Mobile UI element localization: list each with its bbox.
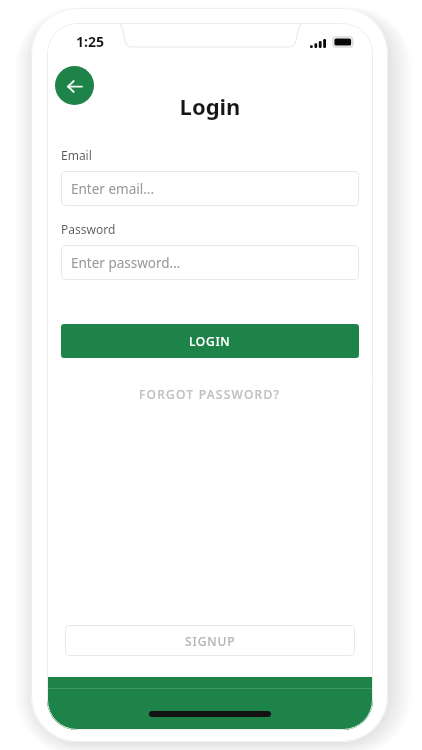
staticText: Enter email... — [71, 180, 155, 198]
button[interactable]: LOGIN — [61, 324, 359, 358]
button[interactable]: SIGNUP — [65, 625, 355, 656]
staticText: FORGOT PASSWORD? — [139, 386, 281, 402]
staticText: LOGIN — [189, 333, 231, 349]
staticText: 1:25 — [76, 32, 104, 51]
button[interactable]: Back — [55, 66, 94, 105]
staticText: Password — [61, 221, 116, 237]
button[interactable]: Enter password... — [61, 245, 359, 280]
button[interactable]: FORGOT PASSWORD? — [61, 384, 359, 404]
staticText: SIGNUP — [185, 633, 236, 649]
button[interactable]: Enter email... — [61, 171, 359, 206]
staticText: Enter password... — [71, 254, 181, 272]
staticText: Login — [47, 91, 373, 121]
staticText: Email — [61, 147, 92, 163]
